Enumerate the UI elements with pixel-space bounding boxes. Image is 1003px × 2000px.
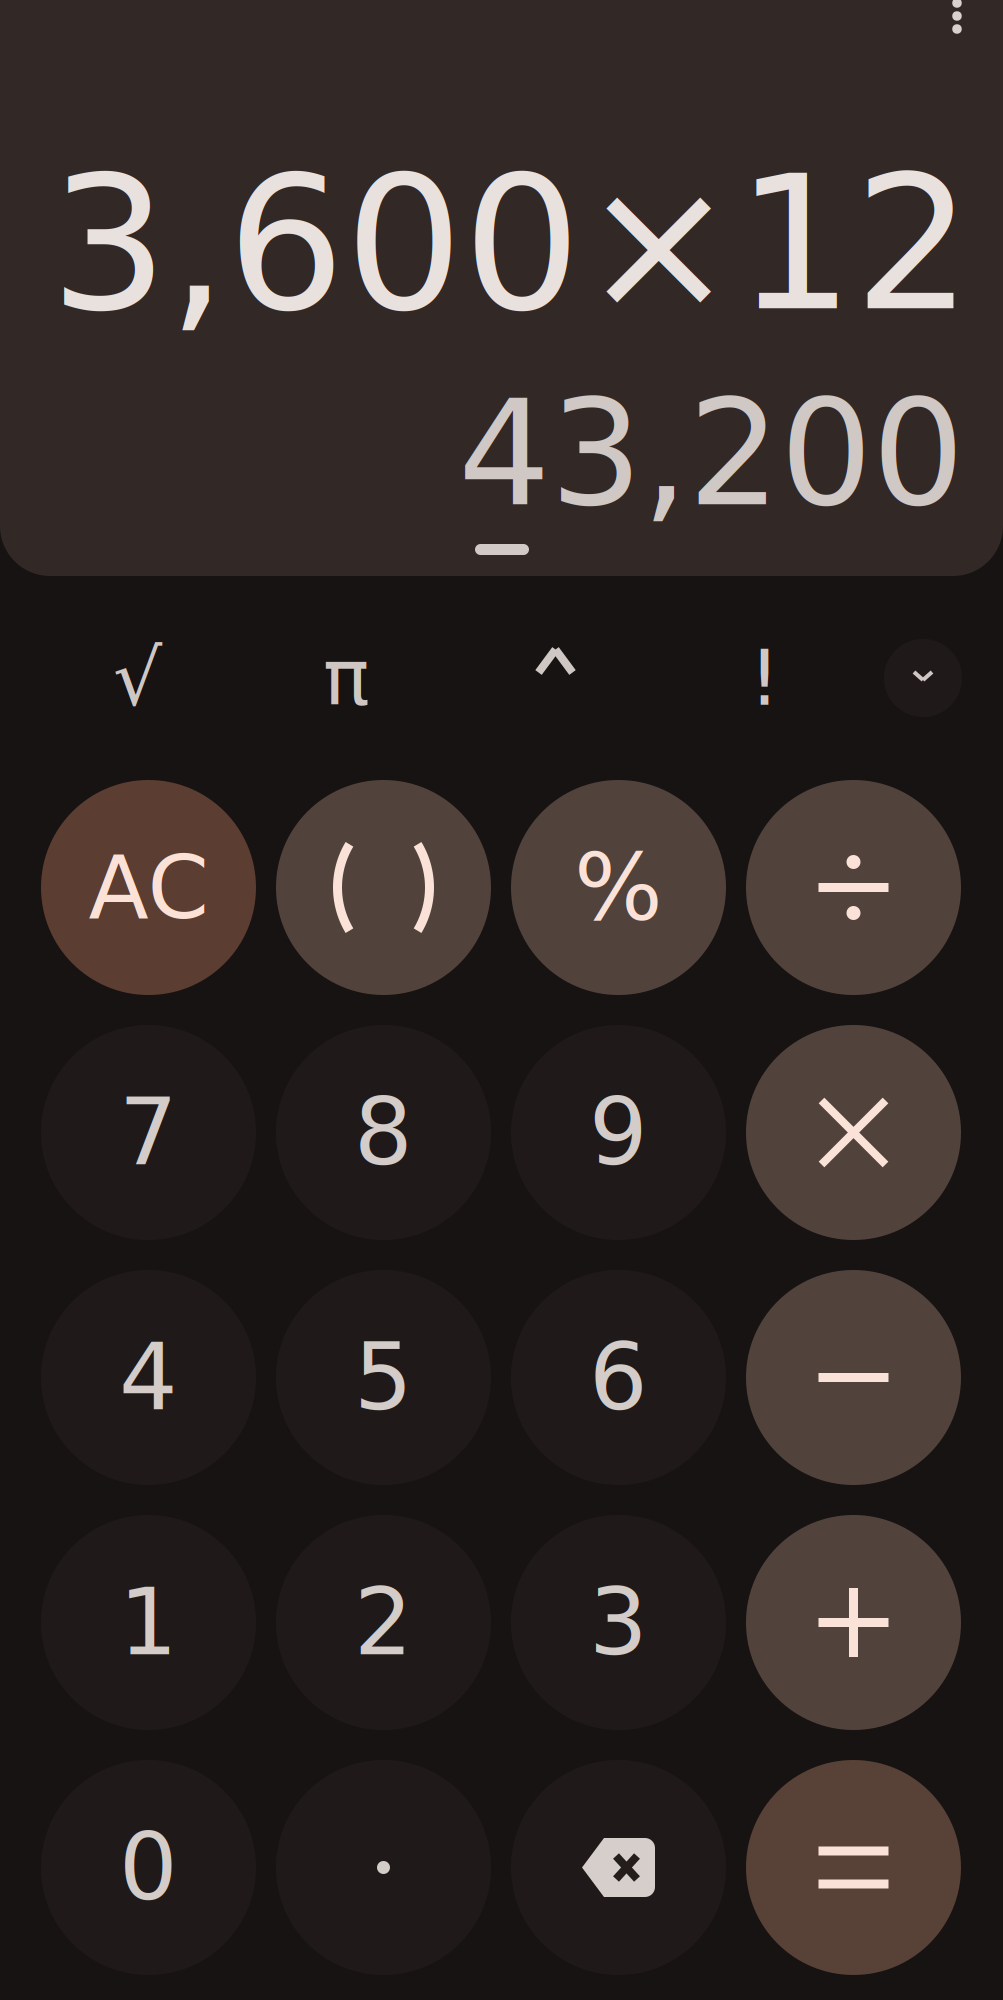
button[interactable] — [276, 1760, 491, 1975]
staticText: 43,200 — [458, 369, 964, 539]
button[interactable]: 9 — [511, 1025, 726, 1240]
button[interactable]: 2 — [276, 1515, 491, 1730]
button[interactable] — [746, 1025, 961, 1240]
button[interactable] — [746, 1515, 961, 1730]
staticText: 6 — [589, 1324, 648, 1431]
button[interactable]: 0 — [41, 1760, 256, 1975]
staticText: ! — [749, 633, 780, 723]
staticText: 2 — [354, 1569, 413, 1676]
staticText: 8 — [354, 1079, 413, 1186]
button[interactable] — [746, 780, 961, 995]
button[interactable]: 7 — [41, 1025, 256, 1240]
button[interactable]: 6 — [511, 1270, 726, 1485]
button[interactable]: Power — [451, 618, 660, 738]
button[interactable]: 4 — [41, 1270, 256, 1485]
button[interactable]: 3 — [511, 1515, 726, 1730]
staticText: √ — [113, 633, 162, 723]
staticText: 9 — [589, 1079, 648, 1186]
staticText: % — [574, 833, 663, 942]
button[interactable]: 1 — [41, 1515, 256, 1730]
button[interactable] — [276, 780, 491, 995]
button[interactable]: √ — [33, 618, 242, 738]
button[interactable]: 5 — [276, 1270, 491, 1485]
staticText: AC — [88, 836, 208, 939]
staticText: 4 — [119, 1324, 178, 1431]
staticText: 5 — [354, 1324, 413, 1431]
staticText: 0 — [119, 1814, 178, 1921]
staticText: 1 — [119, 1569, 178, 1676]
button[interactable]: Expand — [884, 639, 962, 717]
button[interactable]: ! — [660, 618, 869, 738]
button[interactable]: % — [511, 780, 726, 995]
button[interactable] — [746, 1270, 961, 1485]
staticText: 3 — [589, 1569, 648, 1676]
button[interactable] — [511, 1760, 726, 1975]
button[interactable]: More options — [922, 0, 992, 51]
button[interactable] — [746, 1760, 961, 1975]
button[interactable]: π — [242, 618, 451, 738]
staticText: 3,600×12 — [50, 136, 972, 352]
button[interactable]: 8 — [276, 1025, 491, 1240]
staticText: 7 — [119, 1079, 178, 1186]
staticText: π — [323, 633, 370, 723]
button[interactable]: AC — [41, 780, 256, 995]
